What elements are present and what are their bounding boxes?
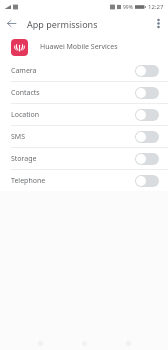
button[interactable]: Telephone [0, 170, 168, 191]
button[interactable]: More options [148, 13, 168, 34]
button[interactable]: Storage [0, 148, 168, 169]
staticText: Storage [11, 154, 37, 164]
button[interactable]: Huawei Mobile Services [0, 34, 168, 60]
staticText: Camera [11, 66, 37, 76]
button[interactable]: Contacts [0, 82, 168, 103]
staticText: Huawei Mobile Services [40, 42, 118, 52]
staticText: App permissions [27, 18, 98, 30]
button[interactable]: Toggle permission [135, 87, 159, 99]
button[interactable]: Back [0, 13, 22, 34]
button[interactable]: Camera [0, 60, 168, 81]
staticText: SMS [11, 132, 26, 142]
button[interactable]: Toggle permission [135, 175, 159, 187]
button[interactable]: Home [80, 339, 88, 347]
button[interactable]: Toggle permission [135, 131, 159, 143]
button[interactable]: Toggle permission [135, 109, 159, 121]
button[interactable]: Back [36, 339, 44, 347]
button[interactable]: Toggle permission [135, 65, 159, 77]
button[interactable]: Recents [124, 339, 132, 347]
staticText: Location [11, 110, 40, 120]
button[interactable]: Toggle permission [135, 153, 159, 165]
staticText: Contacts [11, 88, 40, 98]
button[interactable]: SMS [0, 126, 168, 147]
staticText: 99% [123, 4, 133, 11]
button[interactable]: Location [0, 104, 168, 125]
staticText: Telephone [11, 176, 46, 186]
staticText: 12:27 [148, 3, 164, 11]
